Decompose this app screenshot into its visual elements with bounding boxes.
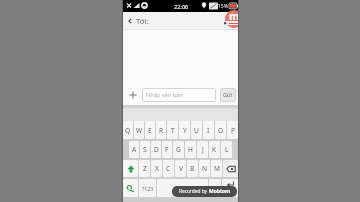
staticText: E [148, 126, 152, 135]
button[interactable]: U [191, 121, 202, 139]
button[interactable]: B [187, 160, 198, 177]
button[interactable]: Gửi [220, 88, 236, 102]
button[interactable]: ?123 [139, 179, 156, 197]
staticText: V [179, 164, 183, 173]
button[interactable] [223, 160, 238, 177]
staticText: Q [125, 126, 131, 135]
staticText: Recorded by [179, 188, 209, 195]
staticText: W [136, 126, 143, 135]
button[interactable]: Tới: [127, 16, 149, 26]
staticText: C [166, 164, 171, 173]
staticText: R [159, 126, 164, 135]
staticText: 22:06 [174, 3, 189, 11]
staticText: M [214, 164, 220, 173]
staticText: Y [183, 126, 187, 135]
staticText: S [143, 145, 147, 154]
staticText: Nhập văn bản [146, 91, 183, 99]
staticText: X [155, 164, 159, 173]
button[interactable]: L [221, 141, 232, 158]
staticText: . [214, 184, 216, 193]
staticText: H [188, 145, 193, 154]
button[interactable]: F [162, 141, 172, 158]
button[interactable]: W [134, 121, 144, 139]
staticText: N [202, 164, 208, 173]
button[interactable] [127, 89, 139, 101]
button[interactable]: X [151, 160, 162, 177]
button[interactable] [157, 179, 208, 197]
staticText: G [176, 145, 181, 154]
staticText: Mobizen [209, 188, 231, 195]
button[interactable]: I [203, 121, 214, 139]
button[interactable]: N [199, 160, 210, 177]
button[interactable]: m [225, 10, 238, 28]
staticText: K [212, 145, 217, 154]
button[interactable]: . [209, 179, 221, 197]
staticText: m [229, 10, 238, 23]
button[interactable]: O [215, 121, 226, 139]
staticText: A [132, 145, 137, 154]
staticText: U [194, 126, 199, 135]
button[interactable]: V [175, 160, 186, 177]
button[interactable]: P [227, 121, 238, 139]
button[interactable]: Y [179, 121, 190, 139]
staticText: T [171, 126, 175, 135]
button[interactable]: Nhập văn bản [142, 88, 216, 102]
button[interactable]: M [211, 160, 222, 177]
staticText: Tới: [136, 16, 149, 26]
staticText: L [225, 145, 229, 154]
staticText: B [190, 164, 195, 173]
staticText: Gửi [223, 91, 233, 99]
staticText: 15% [218, 3, 228, 10]
button[interactable] [123, 179, 138, 197]
staticText: O [218, 126, 224, 135]
button[interactable]: Q [123, 121, 133, 139]
staticText: P [231, 126, 235, 135]
button[interactable]: H [185, 141, 196, 158]
button[interactable] [123, 160, 138, 177]
button[interactable]: D [151, 141, 161, 158]
button[interactable]: R [156, 121, 166, 139]
button[interactable]: J [197, 141, 208, 158]
button[interactable]: A [129, 141, 139, 158]
staticText: ?123 [142, 185, 154, 192]
button[interactable]: E [145, 121, 155, 139]
staticText: J [202, 145, 204, 154]
button[interactable]: S [140, 141, 150, 158]
staticText: D [154, 145, 159, 154]
button[interactable]: C [163, 160, 174, 177]
button[interactable]: G [173, 141, 184, 158]
button[interactable]: Z [139, 160, 150, 177]
staticText: Z [143, 164, 147, 173]
staticText: F [165, 145, 169, 154]
button[interactable] [222, 179, 238, 197]
staticText: I [207, 126, 210, 135]
button[interactable]: K [209, 141, 220, 158]
staticText [182, 184, 184, 193]
button[interactable]: T [167, 121, 178, 139]
